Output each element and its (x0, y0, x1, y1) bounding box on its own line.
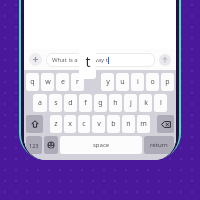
staticText: return (150, 141, 168, 149)
staticText: y (106, 77, 110, 87)
button[interactable]: e (56, 73, 69, 91)
button[interactable]: Send (159, 54, 171, 66)
button[interactable]: o (146, 73, 159, 91)
button[interactable]: y (101, 73, 114, 91)
staticText: l (160, 98, 162, 108)
staticText: m (140, 119, 147, 129)
staticText: j (130, 98, 132, 108)
button[interactable]: Backspace (157, 115, 174, 133)
button[interactable]: p (161, 73, 174, 91)
staticText: v (97, 119, 101, 129)
staticText: x (68, 119, 72, 129)
staticText: space (93, 141, 110, 149)
staticText: b (111, 119, 116, 129)
button[interactable]: 123 (26, 136, 42, 154)
button[interactable]: n (122, 115, 135, 133)
staticText: z (54, 119, 58, 129)
button[interactable]: j (124, 94, 137, 112)
button[interactable]: g (94, 94, 107, 112)
button[interactable]: z (50, 115, 62, 133)
staticText: e (61, 77, 65, 87)
staticText: p (165, 77, 170, 87)
button[interactable]: k (139, 94, 152, 112)
staticText: h (113, 98, 118, 108)
button[interactable]: d (64, 94, 77, 112)
button[interactable]: return (144, 136, 174, 154)
button[interactable]: s (49, 94, 62, 112)
staticText: d (68, 98, 73, 108)
button[interactable]: Shift (26, 115, 43, 133)
staticText: i (137, 77, 139, 87)
button[interactable]: w (41, 73, 54, 91)
staticText: n (126, 119, 131, 129)
staticText: u (120, 77, 125, 87)
button[interactable]: i (131, 73, 144, 91)
staticText: f (84, 98, 87, 108)
staticText: r (76, 77, 79, 87)
button[interactable]: v (92, 115, 105, 133)
button[interactable]: a (33, 94, 47, 112)
button[interactable]: q (26, 73, 39, 91)
staticText: k (144, 98, 148, 108)
staticText: o (150, 77, 155, 87)
button[interactable]: space (60, 136, 142, 154)
staticText: 123 (29, 142, 39, 149)
button[interactable]: h (109, 94, 122, 112)
button[interactable]: b (107, 115, 120, 133)
staticText: a (38, 98, 42, 108)
button[interactable]: l (154, 94, 167, 112)
button[interactable]: t (79, 48, 96, 79)
button[interactable]: Emoji (44, 136, 58, 154)
staticText: q (30, 77, 35, 87)
staticText: g (98, 98, 103, 108)
staticText: s (54, 98, 58, 108)
button[interactable]: x (64, 115, 76, 133)
staticText: w (45, 77, 51, 87)
button[interactable]: c (78, 115, 90, 133)
staticText: What is a (52, 56, 78, 64)
button[interactable]: f (79, 94, 92, 112)
button[interactable]: m (137, 115, 150, 133)
staticText: c (82, 119, 86, 129)
button[interactable]: u (116, 73, 129, 91)
button[interactable]: What is a (46, 53, 155, 67)
staticText: t (85, 52, 91, 71)
staticText: way t (93, 56, 108, 64)
button[interactable] (86, 73, 99, 91)
button[interactable]: Add attachment (29, 53, 42, 66)
button[interactable]: r (71, 73, 84, 91)
